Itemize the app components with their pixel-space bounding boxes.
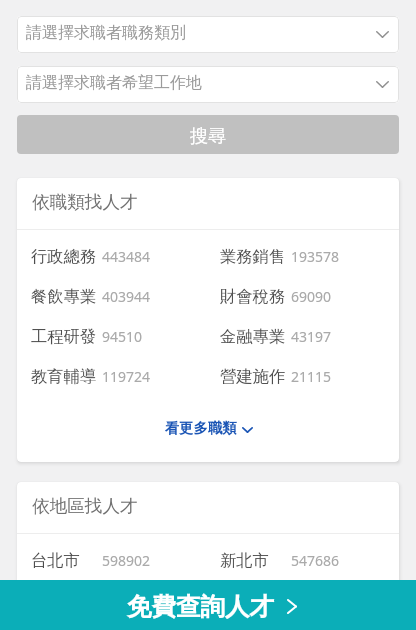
staticText: 193578	[291, 247, 340, 266]
button[interactable]: 選擇求職者職務類別	[17, 16, 399, 53]
staticText: 43197	[291, 327, 332, 346]
staticText: 工程研發	[31, 326, 97, 347]
staticText: 69090	[291, 287, 332, 306]
staticText: 請選擇求職者希望工作地	[26, 73, 202, 93]
staticText: 台北市	[31, 550, 80, 571]
button[interactable]: 桃園市	[31, 581, 220, 621]
button[interactable]: 工程研發	[31, 317, 220, 357]
staticText: 356123	[102, 591, 151, 610]
staticText: 598902	[102, 551, 151, 570]
staticText: 台中市	[220, 590, 269, 611]
staticText: 看更多職類	[165, 419, 237, 437]
button[interactable]: 搜尋	[17, 115, 399, 154]
staticText: 營建施作	[220, 366, 286, 387]
staticText: 403944	[102, 287, 151, 306]
staticText: 443484	[102, 247, 151, 266]
staticText: 教育輔導	[31, 366, 97, 387]
button[interactable]: 營建施作	[220, 357, 399, 397]
button[interactable]: 免費查詢人才	[0, 580, 416, 630]
button[interactable]: 教育輔導	[31, 357, 220, 397]
button[interactable]: 金融專業	[220, 317, 399, 357]
button[interactable]: 台中市	[220, 581, 399, 621]
staticText: 547686	[291, 551, 340, 570]
staticText: 行政總務	[31, 246, 97, 267]
staticText: 依地區找人才	[32, 495, 138, 517]
staticText: 請選擇求職者職務類別	[26, 23, 186, 43]
staticText: 119724	[102, 367, 151, 386]
staticText: 餐飲專業	[31, 286, 97, 307]
button[interactable]: 看更多職類	[17, 397, 399, 462]
staticText: 21115	[291, 367, 332, 386]
button[interactable]: 財會稅務	[220, 277, 399, 317]
staticText: 金融專業	[220, 326, 286, 347]
button[interactable]: 行政總務	[31, 237, 220, 277]
button[interactable]: 業務銷售	[220, 237, 399, 277]
button[interactable]: 選擇求職者希望工作地	[17, 66, 399, 103]
staticText: 依職類找人才	[32, 191, 138, 213]
button[interactable]: 台北市	[31, 541, 220, 581]
button[interactable]: 新北市	[220, 541, 399, 581]
staticText: 免費查詢人才	[127, 591, 274, 622]
staticText: 搜尋	[190, 125, 226, 148]
staticText: 412003	[291, 591, 340, 610]
staticText: 新北市	[220, 550, 269, 571]
staticText: 業務銷售	[220, 246, 286, 267]
staticText: 財會稅務	[220, 286, 286, 307]
button[interactable]: 餐飲專業	[31, 277, 220, 317]
staticText: 94510	[102, 327, 143, 346]
